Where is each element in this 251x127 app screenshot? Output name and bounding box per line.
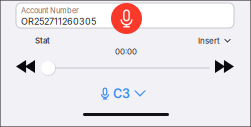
button[interactable]: C3: [101, 86, 146, 101]
button[interactable]: Insert: [198, 36, 231, 46]
staticText: Stat: [35, 36, 50, 45]
button[interactable]: Fast forward: [215, 60, 234, 73]
staticText: 00:00: [115, 47, 137, 56]
staticText: OR252711260305: [21, 16, 96, 27]
staticText: Account Number: [21, 6, 79, 15]
button[interactable]: Record: [111, 3, 142, 34]
staticText: C3: [113, 86, 130, 101]
staticText: Insert: [198, 36, 220, 46]
button[interactable]: Rewind: [16, 60, 35, 73]
